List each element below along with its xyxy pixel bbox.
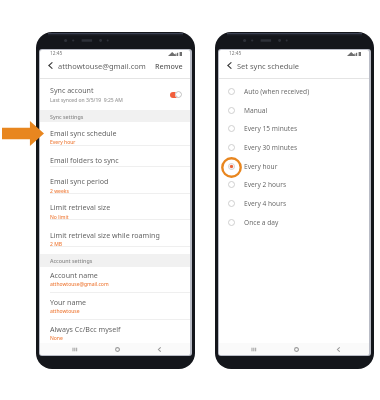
- staticText: 2 weeks: [50, 188, 69, 195]
- button[interactable]: Every hour: [219, 157, 369, 176]
- staticText: Limit retrieval size while roaming: [50, 230, 160, 240]
- staticText: Remove: [155, 61, 183, 71]
- staticText: Set sync schedule: [237, 61, 300, 71]
- staticText: Email folders to sync: [50, 155, 119, 165]
- staticText: Your name: [50, 297, 87, 307]
- button[interactable]: Recents: [64, 343, 84, 355]
- button[interactable]: Home: [107, 343, 127, 355]
- button[interactable]: Every 15 minutes: [219, 119, 369, 138]
- staticText: Sync account: [50, 85, 94, 95]
- button[interactable]: Auto (when received): [219, 82, 369, 101]
- button[interactable]: Manual: [219, 101, 369, 120]
- staticText: Every 4 hours: [244, 199, 287, 208]
- staticText: atthowtouse@gmail.com: [50, 281, 109, 288]
- staticText: Always Cc/Bcc myself: [50, 324, 121, 334]
- button[interactable]: Back: [328, 343, 348, 355]
- button[interactable]: Remove: [153, 58, 185, 74]
- staticText: 2 MB: [50, 241, 62, 248]
- staticText: Every 15 minutes: [244, 124, 298, 133]
- staticText: 12:45: [229, 50, 242, 57]
- button[interactable]: Every 4 hours: [219, 194, 369, 213]
- button[interactable]: Email folders to sync: [40, 146, 190, 167]
- button[interactable]: Once a day: [219, 213, 369, 232]
- button[interactable]: Home: [286, 343, 306, 355]
- staticText: Auto (when received): [244, 87, 310, 96]
- button[interactable]: Account name: [40, 266, 190, 293]
- staticText: Account settings: [50, 257, 93, 264]
- staticText: Manual: [244, 106, 268, 115]
- staticText: atthowtouse: [50, 308, 80, 315]
- staticText: None: [50, 335, 63, 342]
- button[interactable]: Email sync schedule: [40, 121, 190, 146]
- button[interactable]: Your name: [40, 293, 190, 320]
- staticText: Last synced on 3/5/19 9:25 AM: [50, 97, 123, 104]
- button[interactable]: Limit retrieval size: [40, 193, 190, 220]
- staticText: atthowtouse@gmail.com: [58, 61, 146, 71]
- button[interactable]: Back: [224, 60, 235, 71]
- staticText: Every hour: [50, 139, 76, 146]
- button[interactable]: Back: [149, 343, 169, 355]
- staticText: Email sync schedule: [50, 128, 117, 138]
- button[interactable]: Every 2 hours: [219, 175, 369, 194]
- staticText: Sync settings: [50, 113, 84, 120]
- button[interactable]: Limit retrieval size while roaming: [40, 220, 190, 247]
- staticText: Once a day: [244, 218, 279, 227]
- button[interactable]: Back: [45, 60, 56, 71]
- staticText: Email sync period: [50, 176, 109, 186]
- button[interactable]: Sync account toggle: [170, 90, 183, 99]
- button[interactable]: Sync account: [40, 79, 190, 109]
- staticText: Every 2 hours: [244, 180, 287, 189]
- staticText: Account name: [50, 270, 98, 280]
- staticText: Every 30 minutes: [244, 143, 298, 152]
- staticText: Limit retrieval size: [50, 202, 111, 212]
- staticText: 12:45: [50, 50, 63, 57]
- staticText: No limit: [50, 214, 69, 221]
- button[interactable]: Email sync period: [40, 167, 190, 194]
- button[interactable]: Recents: [243, 343, 263, 355]
- staticText: Every hour: [244, 162, 278, 171]
- button[interactable]: Every 30 minutes: [219, 138, 369, 157]
- button[interactable]: Always Cc/Bcc myself: [40, 320, 190, 347]
